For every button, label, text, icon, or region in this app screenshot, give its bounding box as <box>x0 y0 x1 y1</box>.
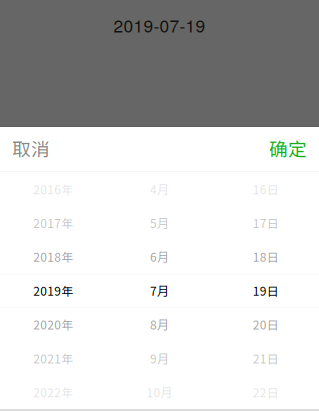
staticText: 22日 <box>253 383 279 401</box>
button[interactable]: 确定 <box>258 127 319 171</box>
staticText: 2019-07-19 <box>113 13 205 37</box>
staticText: 18日 <box>253 248 279 265</box>
staticText: 2017年 <box>33 214 73 231</box>
staticText: 4月 <box>150 180 169 198</box>
staticText: 5月 <box>150 214 169 231</box>
button[interactable]: 2019-07-19 <box>0 0 319 50</box>
staticText: 2016年 <box>33 180 73 198</box>
staticText: 7月 <box>150 282 169 299</box>
staticText: 10月 <box>146 383 172 401</box>
staticText: 2018年 <box>33 248 73 265</box>
staticText: 20日 <box>253 316 279 333</box>
staticText: 17日 <box>253 214 279 231</box>
button[interactable]: 取消 <box>0 127 61 171</box>
staticText: 6月 <box>150 248 169 265</box>
staticText: 8月 <box>150 316 169 333</box>
staticText: 21日 <box>253 349 279 367</box>
staticText: 2022年 <box>33 383 73 401</box>
staticText: 2020年 <box>33 316 73 333</box>
staticText: 16日 <box>253 180 279 198</box>
staticText: 2021年 <box>33 349 73 367</box>
staticText: 确定 <box>269 134 307 161</box>
staticText: 9月 <box>150 349 169 367</box>
staticText: 19日 <box>253 282 279 299</box>
staticText: 取消 <box>12 134 50 161</box>
staticText: 2019年 <box>33 282 73 299</box>
